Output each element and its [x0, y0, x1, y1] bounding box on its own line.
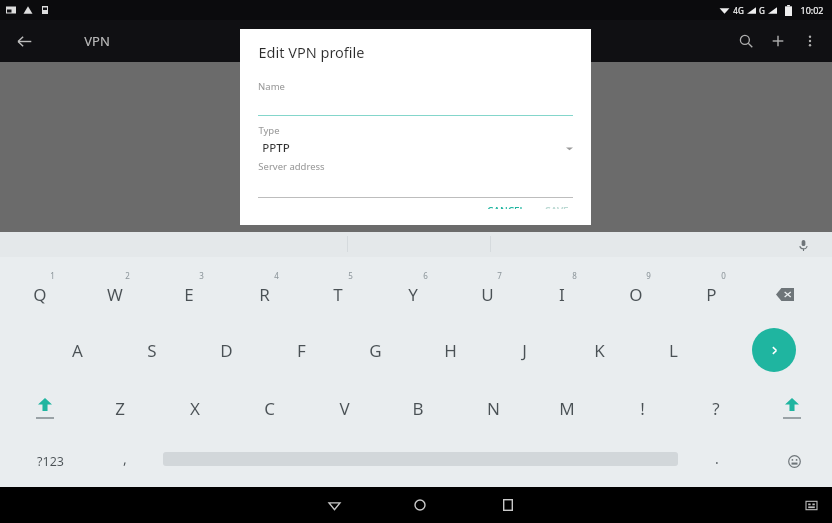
- staticText: I: [559, 283, 565, 306]
- button[interactable]: S: [119, 324, 185, 376]
- staticText: Edit VPN profile: [258, 42, 365, 62]
- button[interactable]: T: [305, 268, 371, 320]
- button[interactable]: Shift: [765, 382, 819, 434]
- button[interactable]: A: [44, 324, 110, 376]
- staticText: A: [72, 339, 83, 362]
- staticText: Type: [258, 124, 280, 137]
- button[interactable]: Voice input: [792, 234, 814, 256]
- staticText: U: [481, 283, 494, 306]
- staticText: SAVE: [545, 204, 569, 209]
- staticText: 9: [646, 270, 651, 281]
- button[interactable]: ?: [683, 382, 749, 434]
- staticText: Y: [408, 283, 418, 306]
- staticText: G: [759, 5, 765, 16]
- staticText: G: [369, 339, 382, 362]
- button[interactable]: Back: [304, 487, 364, 523]
- staticText: ?: [712, 397, 720, 420]
- staticText: Name: [258, 80, 285, 93]
- button[interactable]: Add: [762, 25, 794, 57]
- staticText: B: [412, 397, 424, 420]
- staticText: T: [333, 283, 343, 306]
- staticText: ?123: [37, 453, 64, 470]
- button[interactable]: Back: [8, 25, 40, 57]
- button[interactable]: Shift: [18, 382, 72, 434]
- staticText: 6: [423, 270, 428, 281]
- staticText: 8: [572, 270, 577, 281]
- button[interactable]: N: [460, 382, 526, 434]
- staticText: !: [640, 397, 645, 420]
- button[interactable]: B: [385, 382, 451, 434]
- button[interactable]: Home: [390, 487, 450, 523]
- button[interactable]: V: [311, 382, 377, 434]
- button[interactable]: Search: [730, 25, 762, 57]
- button[interactable]: SAVE: [535, 198, 579, 215]
- staticText: 4: [274, 270, 279, 281]
- button[interactable]: Comma: [95, 439, 155, 483]
- button[interactable]: M: [534, 382, 600, 434]
- staticText: Q: [33, 283, 47, 306]
- staticText: R: [259, 283, 270, 306]
- button[interactable]: L: [640, 324, 706, 376]
- staticText: M: [559, 397, 575, 420]
- staticText: K: [594, 339, 605, 362]
- button[interactable]: ?123: [10, 439, 90, 483]
- button[interactable]: F: [268, 324, 334, 376]
- staticText: PPTP: [262, 140, 290, 156]
- button[interactable]: Recents: [478, 487, 538, 523]
- button[interactable]: O: [603, 268, 669, 320]
- button[interactable]: Enter: [752, 328, 796, 372]
- staticText: O: [629, 283, 643, 306]
- staticText: H: [444, 339, 457, 362]
- button[interactable]: C: [236, 382, 302, 434]
- button[interactable]: Emoji: [772, 439, 816, 483]
- staticText: .: [715, 449, 719, 468]
- button[interactable]: G: [342, 324, 408, 376]
- staticText: CANCEL: [487, 204, 525, 209]
- staticText: 2: [125, 270, 130, 281]
- staticText: N: [487, 397, 500, 420]
- button[interactable]: More options: [794, 25, 826, 57]
- staticText: S: [147, 339, 157, 362]
- button[interactable]: K: [566, 324, 632, 376]
- staticText: J: [522, 339, 527, 362]
- staticText: D: [220, 339, 233, 362]
- staticText: P: [706, 283, 717, 306]
- staticText: 1: [50, 270, 55, 281]
- staticText: Server address: [258, 160, 325, 173]
- button[interactable]: Z: [87, 382, 153, 434]
- staticText: L: [669, 339, 678, 362]
- staticText: VPN: [84, 32, 110, 50]
- staticText: X: [190, 397, 200, 420]
- button[interactable]: Period: [692, 439, 742, 483]
- button[interactable]: I: [529, 268, 595, 320]
- button[interactable]: H: [417, 324, 483, 376]
- button[interactable]: !: [609, 382, 675, 434]
- button[interactable]: R: [231, 268, 297, 320]
- button[interactable]: X: [162, 382, 228, 434]
- staticText: 0: [721, 270, 726, 281]
- staticText: F: [297, 339, 306, 362]
- button[interactable]: Backspace: [755, 268, 815, 320]
- button[interactable]: J: [491, 324, 557, 376]
- staticText: 5: [348, 270, 353, 281]
- button[interactable]: U: [454, 268, 520, 320]
- button[interactable]: D: [193, 324, 259, 376]
- staticText: ,: [123, 449, 127, 468]
- staticText: 4G: [733, 5, 744, 16]
- staticText: Z: [115, 397, 125, 420]
- staticText: C: [264, 397, 275, 420]
- staticText: 7: [497, 270, 502, 281]
- button[interactable]: E: [156, 268, 222, 320]
- button[interactable]: Y: [380, 268, 446, 320]
- button[interactable]: W: [82, 268, 148, 320]
- button[interactable]: Switch keyboard: [798, 492, 824, 518]
- staticText: V: [339, 397, 350, 420]
- staticText: W: [107, 283, 123, 306]
- button[interactable]: CANCEL: [477, 198, 535, 215]
- staticText: 3: [199, 270, 204, 281]
- button[interactable]: P: [678, 268, 744, 320]
- button[interactable]: Q: [7, 268, 73, 320]
- staticText: 10:02: [800, 4, 824, 16]
- staticText: E: [184, 283, 194, 306]
